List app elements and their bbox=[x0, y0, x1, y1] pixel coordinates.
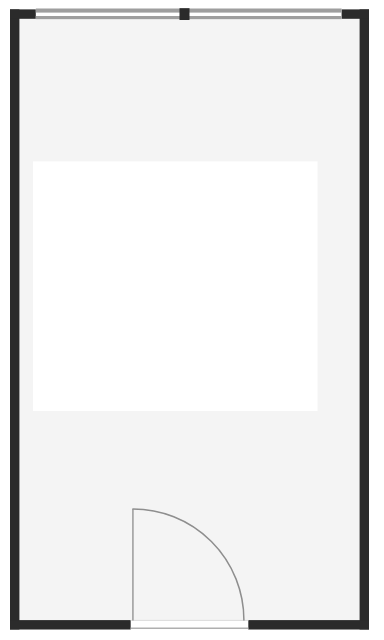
button[interactable]: Room floor plan bbox=[0, 0, 384, 640]
